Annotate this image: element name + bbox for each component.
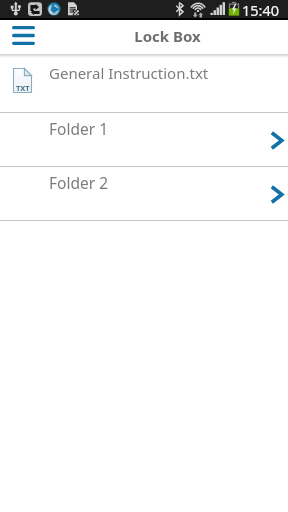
staticText: Folder 2 xyxy=(49,172,108,193)
other: Open Folder 2 xyxy=(270,185,284,204)
button[interactable]: TXT xyxy=(0,58,288,112)
other: Open Folder 1 xyxy=(270,131,284,150)
staticText: Folder 1 xyxy=(49,118,108,139)
button[interactable]: Folder 2 xyxy=(0,167,288,220)
button[interactable]: Menu xyxy=(0,20,46,54)
staticText: General Instruction.txt xyxy=(49,63,209,83)
button[interactable]: Folder 1 xyxy=(0,113,288,166)
staticText: TXT xyxy=(16,83,30,93)
staticText: Lock Box xyxy=(134,26,201,46)
staticText: 15:40 xyxy=(242,0,280,18)
